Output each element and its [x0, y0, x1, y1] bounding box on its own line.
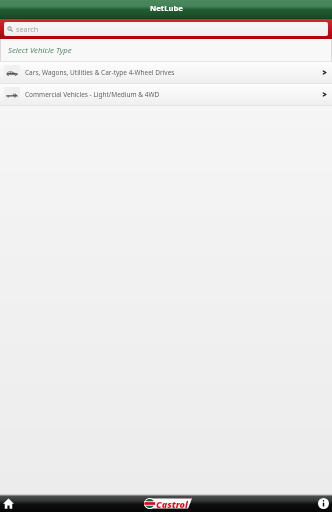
staticText: search: [16, 24, 39, 34]
button[interactable]: Home: [2, 497, 14, 509]
staticText: Castrol: [156, 498, 188, 509]
staticText: Select Vehicle Type: [8, 45, 72, 56]
staticText: NetLube: [150, 3, 183, 13]
button[interactable]: Commercial Vehicles - Light/Medium & 4WD: [0, 84, 332, 105]
button[interactable]: search: [4, 22, 328, 36]
staticText: Commercial Vehicles - Light/Medium & 4WD: [25, 90, 321, 99]
button[interactable]: Castrol: [143, 498, 192, 509]
staticText: Cars, Wagons, Utilities & Car-type 4-Whe…: [25, 68, 321, 77]
button[interactable]: Cars, Wagons, Utilities & Car-type 4-Whe…: [0, 62, 332, 83]
button[interactable]: Info: [318, 498, 329, 509]
